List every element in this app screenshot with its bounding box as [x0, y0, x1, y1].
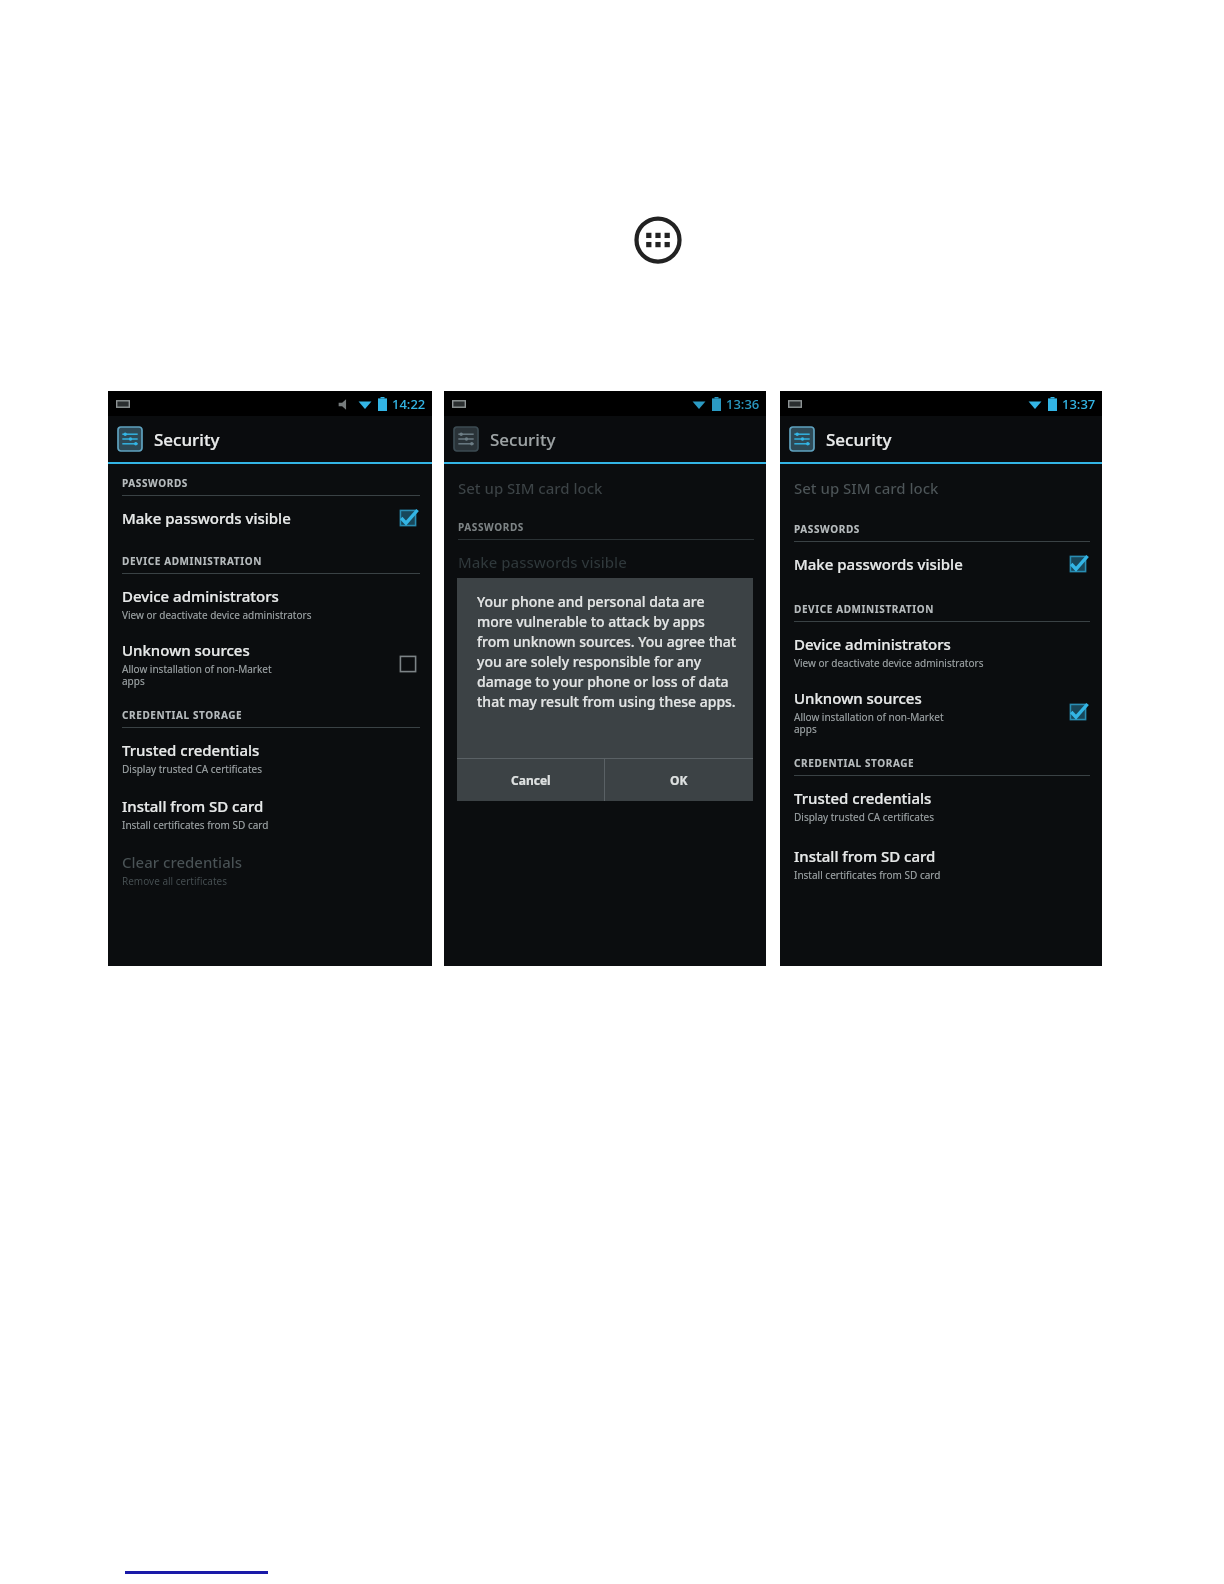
- staticText: CREDENTIAL STORAGE: [794, 756, 915, 770]
- staticText: Install from SD card: [122, 796, 264, 816]
- staticText: Device administrators: [122, 586, 279, 606]
- button[interactable]: Device administrators: [108, 574, 432, 632]
- staticText: CREDENTIAL STORAGE: [122, 708, 243, 722]
- button[interactable]: Device administrators: [780, 622, 1102, 680]
- button[interactable]: Install from SD card: [444, 740, 766, 796]
- button[interactable]: Security: [444, 416, 766, 462]
- button[interactable]: Clear credentials: [108, 842, 432, 898]
- button[interactable]: Unchecked: [398, 654, 418, 674]
- staticText: 14:22: [392, 395, 426, 413]
- staticText: PASSWORDS: [794, 522, 860, 536]
- button[interactable]: Set up SIM card lock: [444, 472, 766, 508]
- button[interactable]: Security: [780, 416, 1102, 462]
- button[interactable]: Checked: [398, 508, 418, 528]
- staticText: Install certificates from SD card: [122, 818, 269, 832]
- staticText: Set up SIM card lock: [458, 478, 603, 498]
- button[interactable]: Install from SD card: [780, 834, 1102, 892]
- staticText: Trusted credentials: [458, 694, 596, 714]
- staticText: OK: [670, 772, 688, 788]
- staticText: View or deactivate device administrators: [794, 656, 984, 670]
- staticText: Set up SIM card lock: [794, 478, 939, 498]
- staticText: Device administrators: [794, 634, 951, 654]
- staticText: Trusted credentials: [122, 740, 260, 760]
- button[interactable]: Make passwords visible: [780, 542, 1102, 590]
- button[interactable]: Cancel: [457, 759, 604, 801]
- button[interactable]: Checked: [1068, 702, 1088, 722]
- staticText: View or deactivate device administrators: [122, 608, 312, 622]
- staticText: Display trusted CA certificates: [122, 762, 262, 776]
- staticText: Make passwords visible: [458, 552, 627, 572]
- staticText: Unknown sources: [794, 688, 922, 708]
- button[interactable]: Unknown sources: [780, 680, 1102, 744]
- button[interactable]: Unknown sources: [108, 632, 432, 696]
- staticText: Allow installation of non-Market apps: [122, 662, 272, 688]
- staticText: Your phone and personal data are more vu…: [477, 592, 737, 711]
- staticText: PASSWORDS: [458, 520, 524, 534]
- button[interactable]: Checked: [1068, 554, 1088, 574]
- staticText: Security: [154, 428, 220, 451]
- staticText: DEVICE ADMINISTRATION: [122, 554, 262, 568]
- staticText: Allow installation of non-Market apps: [794, 710, 944, 736]
- button[interactable]: Security: [108, 416, 432, 462]
- button[interactable]: Trusted credentials: [444, 682, 766, 740]
- staticText: DEVICE ADMINISTRATION: [794, 602, 934, 616]
- staticText: Install from SD card: [794, 846, 936, 866]
- button[interactable]: OK: [605, 759, 753, 801]
- staticText: Make passwords visible: [122, 508, 291, 528]
- button[interactable]: Make passwords visible: [108, 496, 432, 542]
- staticText: Install certificates from SD card: [458, 772, 605, 786]
- staticText: Install from SD card: [458, 750, 600, 770]
- staticText: Unknown sources: [122, 640, 250, 660]
- staticText: Cancel: [511, 772, 551, 788]
- staticText: Security: [490, 428, 556, 451]
- staticText: Remove all certificates: [122, 874, 227, 888]
- staticText: Install certificates from SD card: [794, 868, 941, 882]
- button[interactable]: Set up SIM card lock: [780, 472, 1102, 510]
- button[interactable]: Install from SD card: [108, 786, 432, 842]
- staticText: PASSWORDS: [122, 476, 188, 490]
- staticText: Security: [826, 428, 892, 451]
- staticText: Make passwords visible: [794, 554, 963, 574]
- staticText: 13:36: [726, 395, 760, 413]
- button[interactable]: Trusted credentials: [108, 728, 432, 786]
- button[interactable]: All apps: [633, 215, 683, 265]
- staticText: 13:37: [1062, 395, 1096, 413]
- staticText: Clear credentials: [122, 852, 243, 872]
- button[interactable]: Trusted credentials: [780, 776, 1102, 834]
- button[interactable]: Make passwords visible: [444, 540, 766, 586]
- staticText: Display trusted CA certificates: [794, 810, 934, 824]
- staticText: Trusted credentials: [794, 788, 932, 808]
